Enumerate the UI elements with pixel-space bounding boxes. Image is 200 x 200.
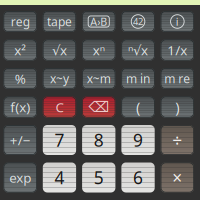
staticText: x²	[14, 41, 26, 59]
staticText: 6	[133, 166, 143, 189]
button[interactable]: 7	[43, 125, 76, 155]
staticText: √x	[52, 41, 67, 59]
staticText: 42	[133, 15, 143, 28]
button[interactable]: x~m	[82, 68, 115, 89]
button[interactable]: 9	[121, 125, 155, 155]
staticText: exp	[9, 169, 31, 186]
staticText: tape	[47, 13, 72, 29]
staticText: )	[175, 97, 179, 117]
staticText: f(x)	[10, 98, 30, 116]
button[interactable]: C	[43, 96, 76, 117]
button[interactable]: 1/x	[161, 39, 194, 60]
button[interactable]: )	[161, 96, 194, 117]
staticText: C	[55, 98, 63, 116]
button[interactable]: exp	[3, 162, 37, 192]
button[interactable]: +/−	[3, 125, 37, 155]
button[interactable]: m re	[161, 68, 194, 89]
staticText: reg	[11, 13, 30, 29]
staticText: 5	[94, 166, 104, 189]
button[interactable]: 6	[121, 162, 155, 192]
staticText: A›B	[90, 14, 107, 29]
button[interactable]: f(x)	[3, 96, 37, 117]
staticText: i	[176, 14, 179, 29]
button[interactable]: ⌫	[82, 96, 115, 117]
button[interactable]: (	[121, 96, 155, 117]
staticText: 1/x	[167, 41, 187, 59]
button[interactable]: 42	[121, 11, 155, 32]
staticText: ⌫	[88, 99, 109, 115]
staticText: 4	[54, 166, 64, 189]
button[interactable]: %	[3, 68, 37, 89]
staticText: x~m	[87, 70, 111, 86]
staticText: x~y	[50, 70, 69, 86]
button[interactable]: 5	[82, 162, 115, 192]
staticText: (	[136, 97, 140, 117]
staticText: ⁿ√x	[128, 41, 148, 59]
staticText: 8	[94, 128, 104, 151]
button[interactable]: reg	[3, 11, 37, 32]
button[interactable]: ÷	[161, 125, 194, 155]
button[interactable]: i	[161, 11, 194, 32]
staticText: 7	[54, 128, 64, 151]
staticText: m re	[164, 70, 190, 86]
button[interactable]: 8	[82, 125, 115, 155]
staticText: ×	[172, 166, 182, 189]
button[interactable]: 4	[43, 162, 76, 192]
staticText: xⁿ	[93, 41, 105, 59]
button[interactable]: m in	[121, 68, 155, 89]
button[interactable]: √x	[43, 39, 76, 60]
staticText: m in	[126, 70, 150, 86]
button[interactable]: x~y	[43, 68, 76, 89]
button[interactable]: A›B	[82, 11, 115, 32]
button[interactable]: x²	[3, 39, 37, 60]
button[interactable]: xⁿ	[82, 39, 115, 60]
button[interactable]: ×	[161, 162, 194, 192]
staticText: 9	[133, 128, 143, 151]
staticText: +/−	[10, 131, 31, 149]
button[interactable]: tape	[43, 11, 76, 32]
staticText: ÷	[172, 128, 182, 151]
staticText: %	[15, 70, 26, 87]
button[interactable]: ⁿ√x	[121, 39, 155, 60]
